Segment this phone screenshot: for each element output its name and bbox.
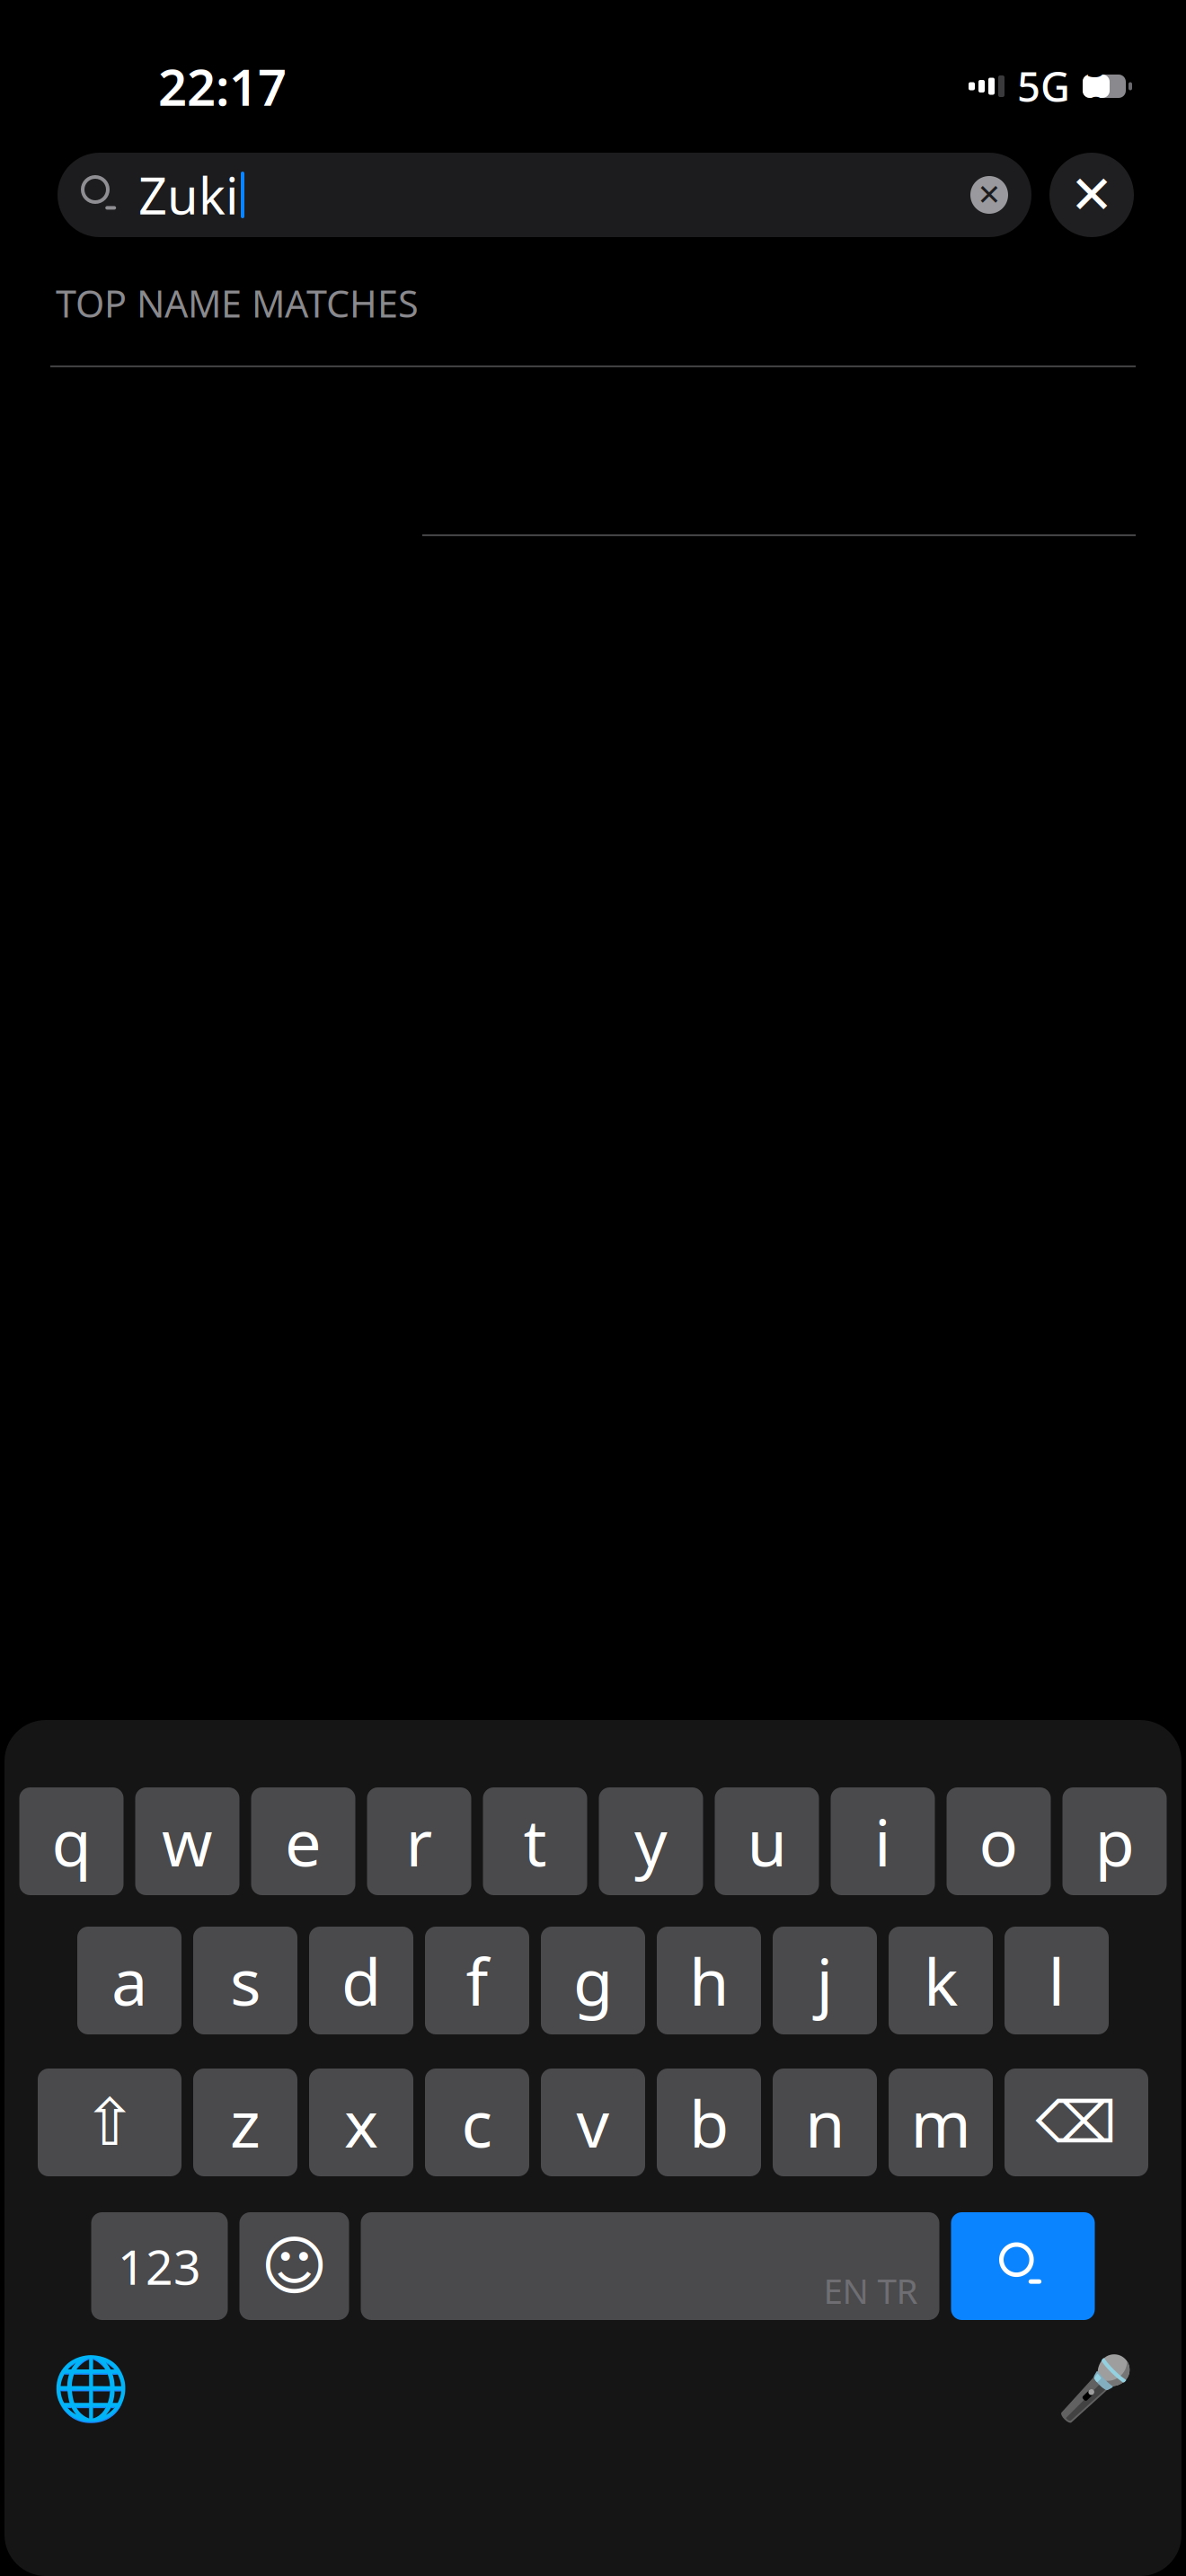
staticText: k (924, 1938, 958, 2023)
staticText: w (162, 1798, 213, 1884)
button[interactable]: m (889, 2069, 993, 2176)
staticText: m (911, 2079, 971, 2165)
button[interactable]: y (599, 1787, 703, 1895)
staticText: e (285, 1798, 322, 1884)
button[interactable]: 123 (91, 2212, 228, 2320)
button[interactable]: q (19, 1787, 124, 1895)
button[interactable]: t (483, 1787, 587, 1895)
staticText: b (689, 2079, 729, 2165)
button[interactable]: Dictate (1050, 2343, 1140, 2433)
staticText: d (341, 1938, 381, 2023)
staticText: ⇧ (83, 2086, 137, 2159)
staticText: n (805, 2079, 845, 2165)
button[interactable] (0, 367, 1186, 534)
staticText: j (816, 1938, 833, 2023)
button[interactable]: x (309, 2069, 413, 2176)
button[interactable]: Delete (1005, 2069, 1148, 2176)
button[interactable]: c (425, 2069, 529, 2176)
button[interactable]: z (193, 2069, 297, 2176)
button[interactable]: u (715, 1787, 819, 1895)
staticText: g (573, 1938, 613, 2023)
button[interactable]: Zuki (58, 153, 1031, 237)
button[interactable]: d (309, 1927, 413, 2034)
staticText: 30 (1087, 43, 1106, 129)
staticText: 22:17 (158, 53, 287, 120)
staticText: t (523, 1798, 547, 1884)
button[interactable]: Search (951, 2212, 1095, 2320)
staticText: 5G (1017, 59, 1070, 113)
button[interactable]: w (135, 1787, 239, 1895)
staticText: y (634, 1798, 668, 1884)
staticText: q (52, 1798, 91, 1884)
staticText: EN TR (823, 2267, 918, 2313)
staticText: x (344, 2079, 378, 2165)
staticText: s (230, 1938, 261, 2023)
button[interactable]: n (773, 2069, 877, 2176)
staticText: r (406, 1798, 433, 1884)
button[interactable]: s (193, 1927, 297, 2034)
staticText: h (689, 1938, 729, 2023)
staticText: ✕ (1070, 165, 1114, 225)
staticText: i (874, 1798, 891, 1884)
staticText: ☺ (261, 2229, 328, 2303)
staticText: a (111, 1938, 147, 2023)
staticText: p (1095, 1798, 1134, 1884)
button[interactable]: f (425, 1927, 529, 2034)
button[interactable]: i (831, 1787, 935, 1895)
button[interactable]: k (889, 1927, 993, 2034)
button[interactable]: g (541, 1927, 645, 2034)
staticText: v (576, 2079, 610, 2165)
staticText: 🌐 (52, 2353, 129, 2424)
button[interactable]: e (251, 1787, 355, 1895)
staticText: 123 (118, 2234, 201, 2298)
button[interactable]: v (541, 2069, 645, 2176)
button[interactable]: l (1005, 1927, 1109, 2034)
button[interactable]: Close search (1049, 153, 1134, 237)
button[interactable]: Shift (38, 2069, 181, 2176)
staticText: ⌫ (1036, 2090, 1117, 2155)
staticText: l (1048, 1938, 1065, 2023)
button[interactable]: o (947, 1787, 1051, 1895)
button[interactable]: Next keyboard (46, 2343, 136, 2433)
staticText: 🎤 (1057, 2353, 1134, 2424)
button[interactable]: b (657, 2069, 761, 2176)
staticText: TOP NAME MATCHES (56, 278, 419, 328)
staticText: ✕ (977, 179, 1001, 211)
staticText: u (747, 1798, 787, 1884)
staticText: z (230, 2079, 261, 2165)
button[interactable]: h (657, 1927, 761, 2034)
staticText: f (466, 1938, 488, 2023)
staticText: c (461, 2079, 493, 2165)
staticText: Zuki (138, 161, 238, 228)
button[interactable]: Emoji (239, 2212, 349, 2320)
button[interactable]: space (361, 2212, 939, 2320)
staticText: o (979, 1798, 1018, 1884)
button[interactable]: j (773, 1927, 877, 2034)
button[interactable]: a (77, 1927, 181, 2034)
button[interactable]: p (1062, 1787, 1167, 1895)
button[interactable]: r (367, 1787, 471, 1895)
